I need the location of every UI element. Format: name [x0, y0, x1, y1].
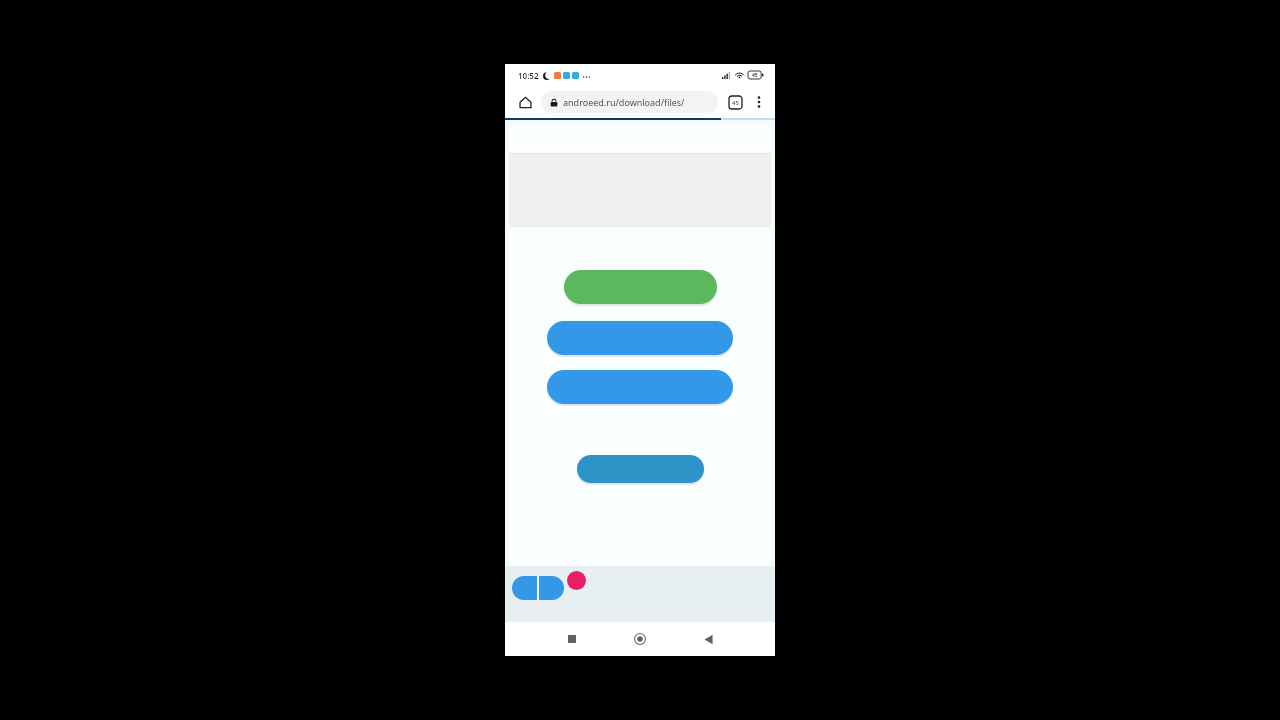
- button[interactable]: androeed.ru/download/files/: [541, 91, 718, 113]
- button[interactable]: Download option 1: [547, 321, 733, 355]
- button[interactable]: Download option 2: [547, 370, 733, 404]
- button[interactable]: Notification badge: [567, 571, 586, 590]
- button[interactable]: Home: [514, 91, 536, 113]
- button[interactable]: Download (green): [564, 270, 717, 304]
- button[interactable]: Tabs, 45 open: [724, 91, 746, 113]
- button[interactable]: Back: [693, 624, 723, 654]
- staticText: 10:52: [518, 70, 539, 81]
- button[interactable]: Share buttons: [512, 576, 564, 600]
- button[interactable]: Home: [625, 624, 655, 654]
- button[interactable]: Secondary action: [577, 455, 704, 483]
- staticText: 45: [752, 72, 758, 79]
- button[interactable]: More options: [749, 92, 769, 112]
- staticText: androeed.ru/download/files/: [563, 96, 685, 108]
- staticText: 45: [732, 99, 739, 107]
- button[interactable]: Recent apps: [557, 624, 587, 654]
